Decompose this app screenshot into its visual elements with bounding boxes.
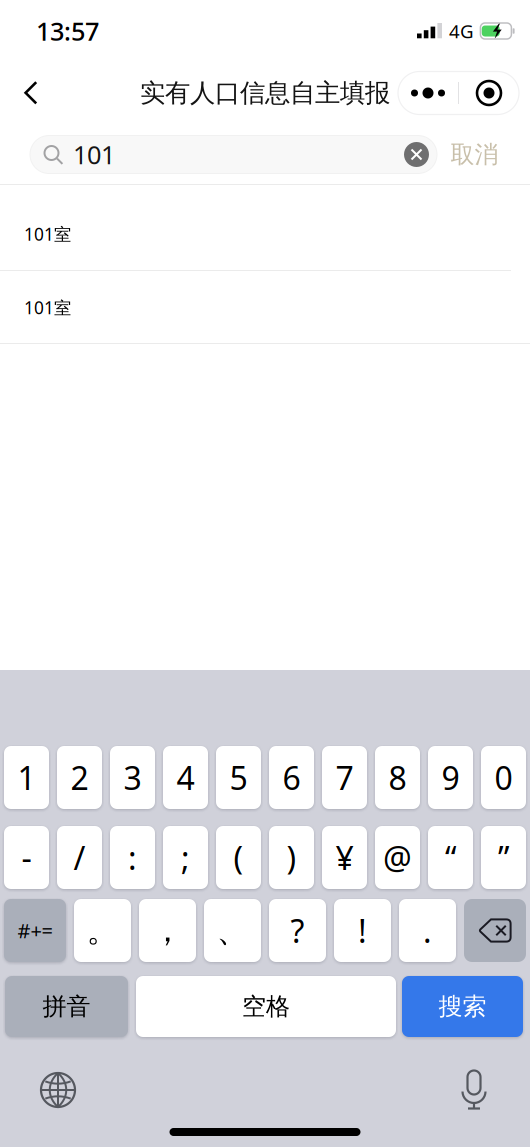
staticText: 拼音 (42, 992, 90, 1021)
button[interactable]: Back (4, 68, 58, 118)
button[interactable]: Dictate (439, 1064, 509, 1116)
staticText: 实有人口信息自主填报 (140, 77, 390, 108)
staticText: 101室 (24, 222, 71, 245)
button[interactable]: “ (428, 826, 473, 889)
button[interactable]: 0 (481, 746, 526, 809)
staticText: 、 (216, 911, 248, 950)
button[interactable]: 101室 (0, 185, 530, 271)
staticText: ( (233, 836, 243, 879)
button[interactable]: : (110, 826, 155, 889)
button[interactable]: ; (163, 826, 208, 889)
button[interactable]: 9 (428, 746, 473, 809)
button[interactable]: Switch keyboard (23, 1064, 93, 1116)
staticText: 9 (441, 756, 459, 799)
staticText: ¥ (335, 836, 353, 879)
staticText: 0 (494, 756, 512, 799)
button[interactable]: Clear text (396, 135, 437, 173)
button[interactable]: ¥ (322, 826, 367, 889)
staticText: #+= (17, 917, 52, 944)
button[interactable]: Close (459, 71, 519, 114)
staticText: 8 (388, 756, 406, 799)
button[interactable]: More (398, 71, 458, 114)
staticText: 101 (73, 138, 115, 171)
staticText: / (73, 836, 85, 879)
button[interactable]: 拼音 (5, 976, 128, 1037)
staticText: 5 (229, 756, 247, 799)
button[interactable]: ! (334, 899, 391, 962)
staticText: 13:57 (36, 14, 99, 48)
staticText: ” (498, 836, 509, 879)
button[interactable]: 、 (204, 899, 261, 962)
button[interactable]: . (399, 899, 456, 962)
button[interactable]: / (57, 826, 102, 889)
staticText: ) (286, 836, 296, 879)
button[interactable]: 8 (375, 746, 420, 809)
button[interactable]: 3 (110, 746, 155, 809)
staticText: 4 (176, 756, 194, 799)
staticText: 空格 (242, 992, 290, 1021)
staticText: 2 (70, 756, 88, 799)
staticText: 取消 (450, 140, 498, 169)
staticText: 7 (335, 756, 353, 799)
button[interactable]: #+= (4, 899, 66, 962)
button[interactable]: 101室 (0, 271, 530, 344)
button[interactable]: 搜索 (402, 976, 523, 1037)
button[interactable]: ” (481, 826, 526, 889)
button[interactable]: 6 (269, 746, 314, 809)
staticText: ? (290, 909, 304, 952)
staticText: 101室 (24, 296, 71, 319)
button[interactable]: ? (269, 899, 326, 962)
staticText: 6 (282, 756, 300, 799)
button[interactable]: 7 (322, 746, 367, 809)
button[interactable]: 5 (216, 746, 261, 809)
staticText: 。 (86, 911, 118, 950)
button[interactable]: ) (269, 826, 314, 889)
button[interactable]: 。 (74, 899, 131, 962)
staticText: “ (445, 836, 456, 879)
staticText: 3 (123, 756, 141, 799)
button[interactable]: 空格 (136, 976, 396, 1037)
staticText: 4G (449, 19, 474, 43)
button[interactable]: - (4, 826, 49, 889)
staticText: . (423, 909, 432, 952)
staticText: - (21, 836, 31, 879)
staticText: 1 (17, 756, 35, 799)
staticText: ; (181, 836, 190, 879)
button[interactable]: Delete (464, 899, 526, 962)
button[interactable]: @ (375, 826, 420, 889)
staticText: ! (358, 909, 367, 952)
button[interactable]: 4 (163, 746, 208, 809)
staticText: @ (383, 836, 412, 879)
button[interactable]: 2 (57, 746, 102, 809)
button[interactable]: 取消 (437, 130, 512, 178)
staticText: ， (151, 911, 183, 950)
button[interactable]: ( (216, 826, 261, 889)
staticText: : (128, 836, 137, 879)
button[interactable]: 1 (4, 746, 49, 809)
staticText: 搜索 (438, 992, 486, 1021)
button[interactable]: ， (139, 899, 196, 962)
